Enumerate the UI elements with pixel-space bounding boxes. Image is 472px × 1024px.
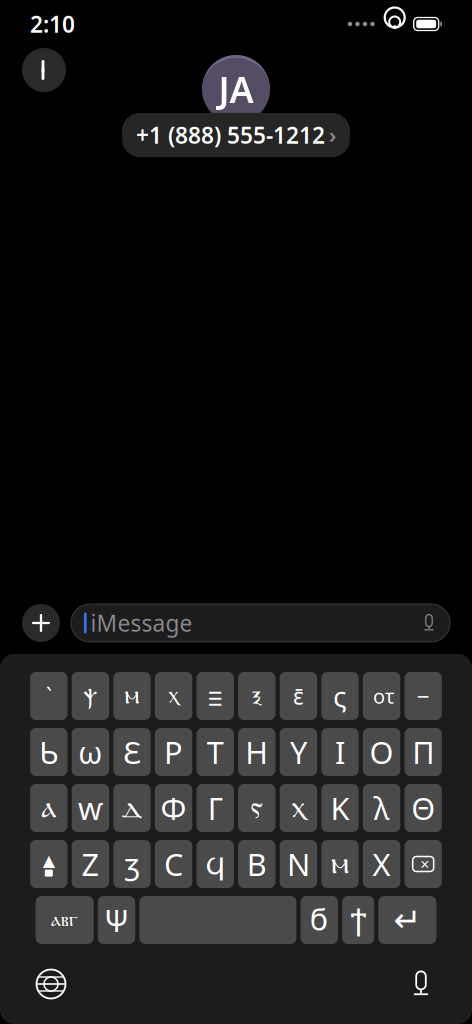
staticText: ⲇ xyxy=(121,793,142,823)
staticText: Η xyxy=(245,732,268,772)
button[interactable]: Υ xyxy=(280,728,317,776)
button[interactable]: iMessage xyxy=(71,604,450,642)
staticText: Ƅ xyxy=(39,732,58,772)
button[interactable]: Ζ xyxy=(72,840,109,888)
staticText: Ι xyxy=(335,732,345,772)
button[interactable]: Γ xyxy=(196,784,234,832)
staticText: › xyxy=(329,121,336,149)
staticText: ⲙ xyxy=(331,849,349,879)
staticText: Ϲ xyxy=(164,844,183,884)
button[interactable]: Τ xyxy=(196,728,234,776)
staticText: Ψ xyxy=(104,900,129,940)
button[interactable]: ⲯ xyxy=(72,672,109,720)
staticText: ς xyxy=(333,677,347,715)
button[interactable]: ⲁⲃⲅ xyxy=(36,896,94,944)
button[interactable]: − xyxy=(404,672,442,720)
button[interactable]: Ϲ xyxy=(155,840,192,888)
button[interactable]: ω xyxy=(72,728,109,776)
staticText: ⲙ xyxy=(124,684,139,708)
staticText: ⲋ xyxy=(251,793,263,823)
button[interactable]: Ο xyxy=(363,728,400,776)
button[interactable]: ⲭ xyxy=(155,672,192,720)
staticText: 2:10 xyxy=(30,9,75,39)
staticText: ⲯ xyxy=(83,684,97,708)
staticText: +1 (888) 555-1212 xyxy=(136,120,325,150)
staticText: ▲ xyxy=(43,851,55,870)
button[interactable]: ⲝ xyxy=(238,672,275,720)
staticText: ϭ xyxy=(310,903,329,937)
button[interactable]: Next keyboard xyxy=(28,961,74,1007)
staticText: ⲷ xyxy=(208,679,222,713)
staticText: Κ xyxy=(330,788,349,828)
button[interactable]: Ι xyxy=(321,728,359,776)
staticText: λ xyxy=(374,788,390,828)
staticText: ↵ xyxy=(393,901,421,939)
staticText: Π xyxy=(412,732,434,772)
staticText: Β xyxy=(247,844,267,884)
staticText: − xyxy=(417,681,430,711)
staticText: Γ xyxy=(208,788,223,828)
button[interactable]: Π xyxy=(404,728,442,776)
button[interactable]: ⱳ xyxy=(72,784,109,832)
button[interactable]: ⲙ xyxy=(321,840,359,888)
button[interactable]: Φ xyxy=(155,784,192,832)
staticText: Χ xyxy=(373,844,391,884)
button[interactable]: Ƅ xyxy=(30,728,67,776)
staticText: iMessage xyxy=(90,608,192,638)
button[interactable]: Add attachment xyxy=(22,604,60,642)
button[interactable]: ⲋ xyxy=(238,784,275,832)
button[interactable]: ⲇ xyxy=(113,784,151,832)
staticText: Φ xyxy=(161,788,187,828)
staticText: ⲁⲃⲅ xyxy=(51,910,78,930)
staticText: ω xyxy=(78,732,103,772)
button[interactable]: Κ xyxy=(321,784,359,832)
button[interactable]: Β xyxy=(238,840,275,888)
button[interactable]: λ xyxy=(363,784,400,832)
staticText: ϯ xyxy=(350,903,366,937)
staticText: Ρ xyxy=(164,732,183,772)
button[interactable]: ⲷ xyxy=(196,672,234,720)
button[interactable]: Return xyxy=(378,896,436,944)
button[interactable]: ⲁ xyxy=(30,784,67,832)
staticText: Θ xyxy=(411,788,435,828)
staticText: Ν xyxy=(287,844,310,884)
staticText: ` xyxy=(46,681,52,711)
staticText: ϥ xyxy=(205,847,225,881)
button[interactable]: ⳅ xyxy=(113,840,151,888)
button[interactable]: Space xyxy=(139,896,296,944)
button[interactable]: ϯ xyxy=(342,896,374,944)
button[interactable]: Ψ xyxy=(98,896,135,944)
button[interactable]: ϭ xyxy=(301,896,338,944)
button[interactable]: ς xyxy=(321,672,359,720)
button[interactable]: Dictate xyxy=(398,961,444,1007)
button[interactable]: Ν xyxy=(280,840,317,888)
button[interactable]: Θ xyxy=(404,784,442,832)
button[interactable]: ε̄ xyxy=(280,672,317,720)
button[interactable]: ⲭ xyxy=(280,784,317,832)
button[interactable]: Shift xyxy=(30,840,67,888)
staticText: ⲭ xyxy=(169,685,179,707)
button[interactable]: ⲙ xyxy=(113,672,151,720)
staticText: Υ xyxy=(290,732,307,772)
button[interactable]: ` xyxy=(30,672,67,720)
staticText: JA xyxy=(218,65,253,113)
staticText: ε̄ xyxy=(293,681,304,711)
button[interactable]: Χ xyxy=(363,840,400,888)
button[interactable]: +1 (888) 555-1212 xyxy=(122,113,350,157)
staticText: Ζ xyxy=(81,844,99,884)
button[interactable]: Η xyxy=(238,728,275,776)
staticText: ⳅ xyxy=(124,844,139,884)
staticText: ⲭ xyxy=(291,793,305,823)
staticText: Τ xyxy=(207,732,224,772)
button[interactable]: Delete xyxy=(404,840,442,888)
staticText: οτ xyxy=(368,683,395,709)
button[interactable]: Back xyxy=(22,48,66,92)
staticText: × xyxy=(420,853,429,875)
staticText: Ο xyxy=(370,732,394,772)
staticText: ⲝ xyxy=(252,684,262,708)
staticText: Ɛ xyxy=(123,732,141,772)
button[interactable]: Ɛ xyxy=(113,728,151,776)
button[interactable]: Ρ xyxy=(155,728,192,776)
button[interactable]: οτ xyxy=(363,672,400,720)
button[interactable]: ϥ xyxy=(196,840,234,888)
